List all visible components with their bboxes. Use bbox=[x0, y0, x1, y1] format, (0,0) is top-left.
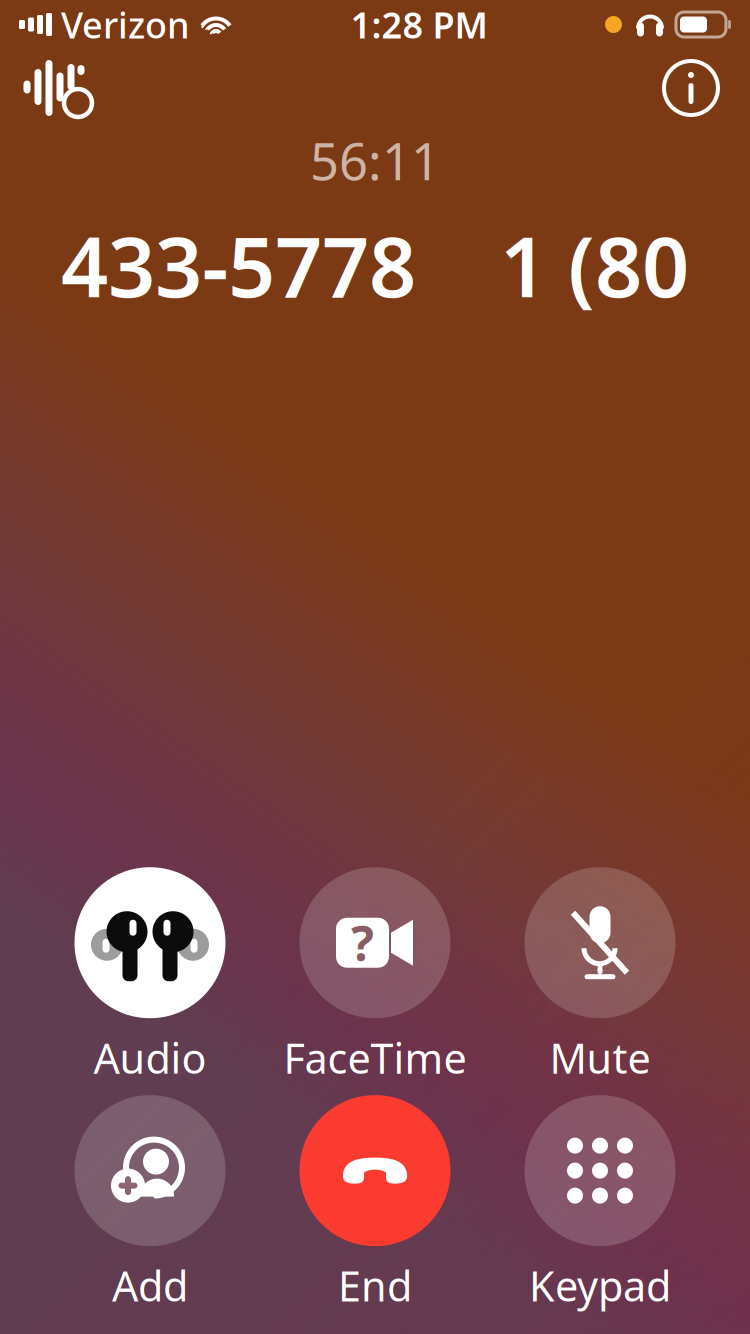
staticText: 433-5778 1 (80 bbox=[61, 210, 689, 320]
staticText: End bbox=[338, 1258, 412, 1313]
staticText: Audio bbox=[93, 1030, 206, 1085]
staticText: FaceTime bbox=[283, 1030, 466, 1085]
button[interactable]: ? bbox=[279, 867, 470, 1085]
staticText: ? bbox=[351, 911, 374, 975]
button[interactable]: Audio bbox=[54, 867, 245, 1085]
staticText: Mute bbox=[549, 1030, 650, 1085]
button[interactable]: Call info bbox=[662, 59, 750, 117]
staticText: Keypad bbox=[529, 1258, 671, 1313]
button[interactable]: Keypad bbox=[504, 1095, 695, 1313]
button[interactable]: Call recording bbox=[0, 57, 92, 119]
button[interactable]: Mute bbox=[504, 867, 695, 1085]
staticText: 56:11 bbox=[310, 127, 440, 194]
staticText: Verizon bbox=[61, 1, 190, 48]
staticText: 1:28 PM bbox=[350, 1, 487, 48]
button[interactable]: End bbox=[279, 1095, 470, 1313]
staticText: Add bbox=[112, 1258, 188, 1313]
button[interactable]: Add bbox=[54, 1095, 245, 1313]
